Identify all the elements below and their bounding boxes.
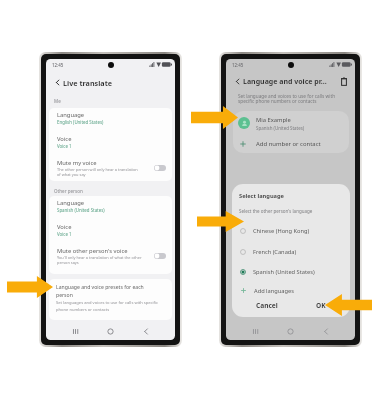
button[interactable]: Back [320,326,331,337]
button[interactable]: French (Canada) [232,245,350,258]
button[interactable]: Language and voice presets for each pers… [49,279,172,320]
staticText: The other person will only hear a transl… [57,167,138,177]
staticText: Select language [239,192,284,200]
staticText: Cancel [256,301,278,310]
button[interactable]: Chinese (Hong Kong) [232,224,350,237]
button[interactable]: Home [285,326,296,337]
staticText: 12:45 [52,62,64,68]
button[interactable]: OK [310,298,332,312]
staticText: Spanish (United States) [57,207,105,213]
staticText: Voice 1 [57,143,72,149]
staticText: Voice [57,135,72,143]
staticText: Mute other person's voice [57,247,128,255]
staticText: Voice [57,223,72,231]
staticText: Mute my voice [57,159,97,167]
staticText: French (Canada) [253,248,297,256]
staticText: Language and voice pr... [243,77,338,87]
staticText: Voice 1 [57,231,72,237]
button[interactable]: Language [49,196,172,220]
staticText: 12:45 [232,62,244,68]
button[interactable]: Add number or contact [233,135,349,153]
staticText: Spanish (United States) [253,268,315,276]
staticText: Chinese (Hong Kong) [253,227,310,235]
button[interactable]: Spanish (United States) [232,265,350,278]
button[interactable]: Navigate up [46,73,113,92]
staticText: Add number or contact [256,140,321,148]
staticText: Set language and voices to use for calls… [238,93,336,105]
staticText: Select the other person's language [239,208,313,214]
button[interactable]: Voice [49,132,172,156]
button[interactable]: Language [49,108,172,132]
button[interactable]: Delete [338,76,350,88]
staticText: Me [54,98,61,104]
staticText: You'll only hear a translation of what t… [57,255,142,265]
button[interactable]: Voice [49,220,172,244]
button[interactable]: Mute other person's voice [57,247,166,265]
button[interactable]: Navigate up [53,78,62,87]
staticText: Spanish (United States) [256,125,305,131]
button[interactable]: Recent apps [70,326,81,337]
staticText: OK [316,301,326,310]
staticText: Language [57,199,85,207]
button[interactable]: Toggle [154,253,166,259]
staticText: Live translate [63,78,113,88]
staticText: Language and voice presets for each pers… [56,284,144,298]
button[interactable]: Cancel [254,298,280,312]
staticText: Mia Example [256,116,291,124]
button[interactable]: Navigate up [233,77,242,86]
staticText: Set languages and voices to use for call… [56,300,159,312]
button[interactable]: Add languages [232,284,350,297]
staticText: English (United States) [57,119,104,125]
button[interactable]: Mute my voice [57,159,166,177]
button[interactable]: Recent apps [250,326,261,337]
button[interactable]: Home [105,326,116,337]
button[interactable]: Toggle [154,165,166,171]
staticText: Other person [54,188,83,194]
button[interactable]: Mia Example [233,111,349,135]
staticText: Add languages [254,287,294,295]
staticText: Language [57,111,85,119]
button[interactable]: Back [140,326,151,337]
